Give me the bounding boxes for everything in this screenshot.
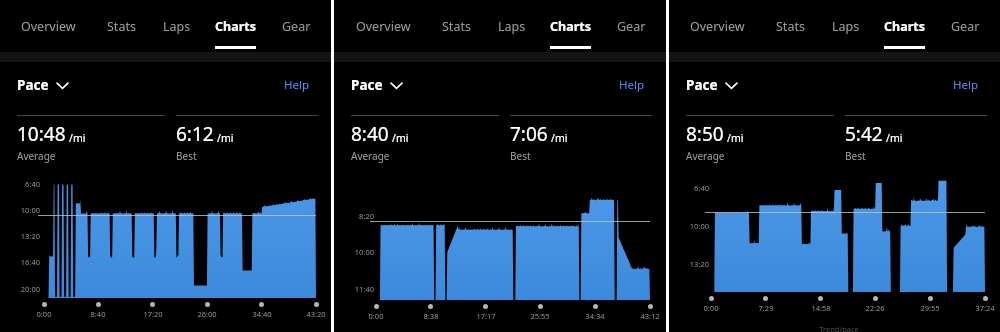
- staticText: 7:06: [510, 121, 548, 147]
- staticText: 5:42: [845, 121, 883, 147]
- staticText: Stats: [776, 18, 805, 35]
- staticText: 6:40: [8, 179, 40, 189]
- staticText: Laps: [832, 18, 860, 35]
- button[interactable]: Laps: [150, 0, 203, 52]
- button[interactable]: Gear: [936, 0, 995, 52]
- staticText: 0:00: [359, 311, 393, 321]
- button[interactable]: Gear: [267, 0, 326, 52]
- button[interactable]: 8:50: [686, 121, 828, 163]
- button[interactable]: Help: [613, 71, 651, 99]
- staticText: 8:38: [414, 311, 448, 321]
- staticText: 11:40: [342, 284, 374, 294]
- staticText: /mi: [217, 131, 234, 145]
- staticText: /mi: [551, 131, 568, 145]
- staticText: 6:12: [176, 121, 214, 147]
- button[interactable]: Overview: [5, 0, 92, 52]
- staticText: 37:24: [968, 303, 1000, 313]
- staticText: 8:40: [351, 121, 389, 147]
- other: Change metric: [726, 82, 737, 89]
- staticText: Best: [510, 149, 531, 163]
- button[interactable]: Help: [947, 71, 985, 99]
- button[interactable]: Charts: [538, 0, 602, 52]
- staticText: 8:50: [686, 121, 724, 147]
- staticText: 10:48: [17, 121, 66, 147]
- button[interactable]: Stats: [427, 0, 485, 52]
- button[interactable]: Pace: [17, 72, 68, 98]
- staticText: Charts: [550, 18, 591, 35]
- button[interactable]: Stats: [92, 0, 150, 52]
- staticText: 14:58: [804, 303, 838, 313]
- button[interactable]: Overview: [674, 0, 761, 52]
- staticText: 0:00: [27, 309, 61, 319]
- button[interactable]: Pace: [686, 72, 737, 98]
- staticText: Laps: [498, 18, 526, 35]
- button[interactable]: Pace: [351, 72, 402, 98]
- staticText: 8:40: [81, 309, 115, 319]
- staticText: Overview: [690, 18, 745, 35]
- staticText: Charts: [884, 18, 925, 35]
- staticText: Pace: [17, 76, 49, 94]
- staticText: Pace: [686, 76, 718, 94]
- staticText: Average: [17, 149, 56, 163]
- staticText: Average: [686, 149, 725, 163]
- staticText: Help: [953, 77, 979, 93]
- staticText: 8:20: [342, 211, 374, 221]
- staticText: Best: [845, 149, 866, 163]
- staticText: 43:20: [299, 309, 333, 319]
- staticText: Help: [284, 77, 310, 93]
- staticText: 0:00: [694, 303, 728, 313]
- button[interactable]: Overview: [339, 0, 427, 52]
- button[interactable]: 10:48: [17, 121, 159, 163]
- staticText: 16:40: [8, 257, 40, 267]
- staticText: Laps: [163, 18, 191, 35]
- button[interactable]: 5:42: [845, 121, 987, 163]
- staticText: 13:20: [677, 259, 709, 269]
- button[interactable]: 8:40: [351, 121, 493, 163]
- staticText: Gear: [282, 18, 311, 35]
- staticText: Trend/pace: [789, 324, 889, 332]
- button[interactable]: Laps: [485, 0, 538, 52]
- staticText: /mi: [727, 131, 744, 145]
- button[interactable]: Help: [278, 71, 316, 99]
- staticText: 7:29: [749, 303, 783, 313]
- staticText: 13:20: [8, 231, 40, 241]
- staticText: 29:55: [913, 303, 947, 313]
- staticText: Gear: [617, 18, 646, 35]
- staticText: 6:40: [677, 183, 709, 193]
- staticText: 10:00: [342, 247, 374, 257]
- button[interactable]: 7:06: [510, 121, 652, 163]
- staticText: Overview: [21, 18, 76, 35]
- staticText: Gear: [951, 18, 980, 35]
- button[interactable]: Charts: [203, 0, 267, 52]
- staticText: 25:55: [523, 311, 557, 321]
- other: Change metric: [57, 82, 68, 89]
- staticText: /mi: [69, 131, 86, 145]
- staticText: 17:20: [136, 309, 170, 319]
- button[interactable]: 6:12: [176, 121, 318, 163]
- staticText: 10:00: [677, 221, 709, 231]
- staticText: 10:00: [8, 205, 40, 215]
- staticText: 22:26: [858, 303, 892, 313]
- staticText: Average: [351, 149, 390, 163]
- staticText: 20:00: [8, 284, 40, 294]
- staticText: Best: [176, 149, 197, 163]
- staticText: Stats: [107, 18, 136, 35]
- staticText: Overview: [356, 18, 411, 35]
- button[interactable]: Gear: [602, 0, 661, 52]
- staticText: 34:34: [578, 311, 612, 321]
- staticText: 34:40: [245, 309, 279, 319]
- staticText: /mi: [886, 131, 903, 145]
- staticText: 43:12: [633, 311, 667, 321]
- staticText: /mi: [392, 131, 409, 145]
- staticText: 17:17: [469, 311, 503, 321]
- other: Change metric: [391, 82, 402, 89]
- staticText: Pace: [351, 76, 383, 94]
- staticText: Help: [619, 77, 645, 93]
- staticText: Charts: [215, 18, 256, 35]
- button[interactable]: Charts: [872, 0, 936, 52]
- button[interactable]: Laps: [819, 0, 872, 52]
- staticText: Stats: [442, 18, 471, 35]
- button[interactable]: Stats: [761, 0, 819, 52]
- staticText: 26:00: [190, 309, 224, 319]
